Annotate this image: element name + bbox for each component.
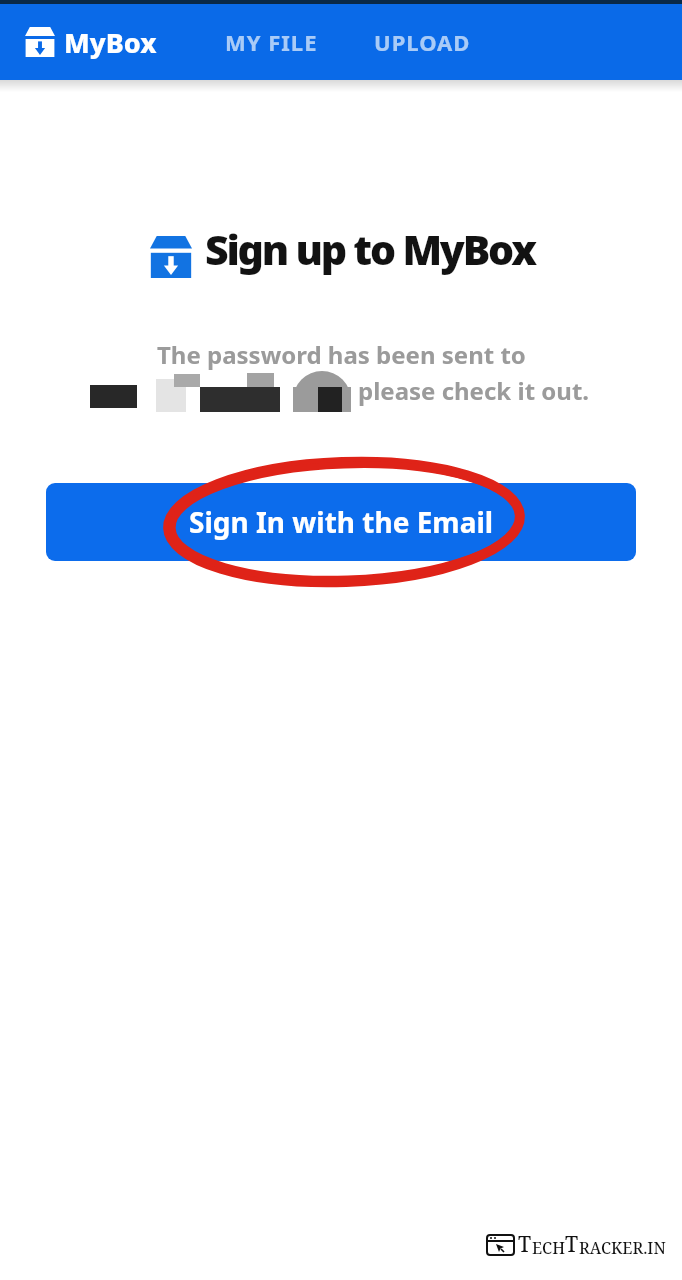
staticText: UPLOAD — [374, 27, 471, 57]
staticText: MY FILE — [225, 27, 318, 57]
staticText: RACKER.IN — [579, 1237, 666, 1259]
button[interactable]: UPLOAD — [366, 15, 479, 69]
staticText: Sign up to MyBox — [205, 221, 535, 277]
staticText: please check it out. — [358, 374, 590, 407]
staticText: MyBox — [64, 24, 157, 61]
staticText: T — [565, 1230, 579, 1259]
button[interactable]: Sign In with the Email — [46, 483, 636, 561]
button[interactable]: MY FILE — [217, 15, 326, 69]
staticText: T — [518, 1230, 532, 1259]
staticText: ECH — [532, 1237, 565, 1259]
staticText: The password has been sent to — [157, 338, 526, 371]
staticText: Sign In with the Email — [189, 503, 494, 541]
